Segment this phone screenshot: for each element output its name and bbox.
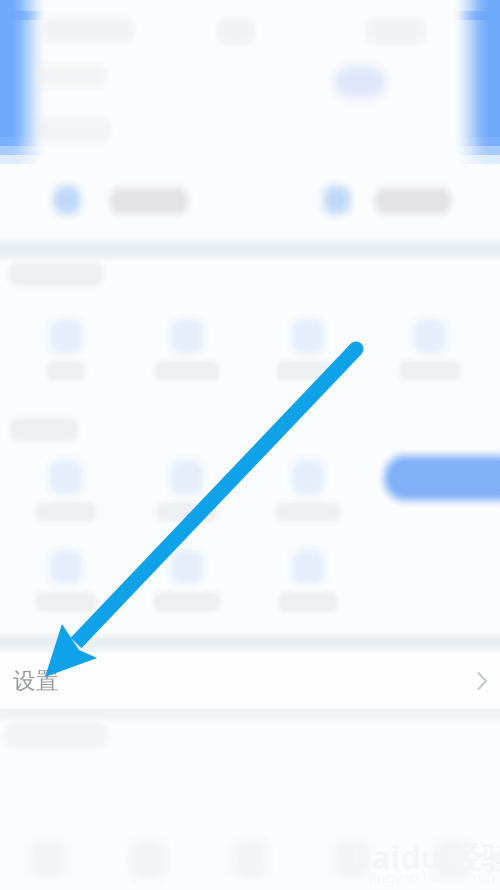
button[interactable]: Shortcut two	[250, 154, 500, 246]
staticText: 设置	[13, 667, 59, 695]
button[interactable]: 设置	[0, 653, 500, 709]
button[interactable]: Grid item	[248, 447, 368, 537]
button[interactable]: Grid item	[6, 306, 126, 396]
button[interactable]: Grid item	[127, 447, 247, 537]
button[interactable]: Grid item	[370, 306, 490, 396]
button[interactable]: Grid item	[6, 537, 126, 627]
button[interactable]: Grid item	[248, 306, 368, 396]
button[interactable]: Grid item	[6, 447, 126, 537]
staticText: Baidu 经验	[350, 836, 500, 878]
button[interactable]: Shortcut one	[0, 154, 250, 246]
button[interactable]: Grid item	[248, 537, 368, 627]
button[interactable]: Grid item	[127, 537, 247, 627]
button[interactable]: Grid item	[127, 306, 247, 396]
button[interactable]: Tab item	[402, 828, 500, 890]
